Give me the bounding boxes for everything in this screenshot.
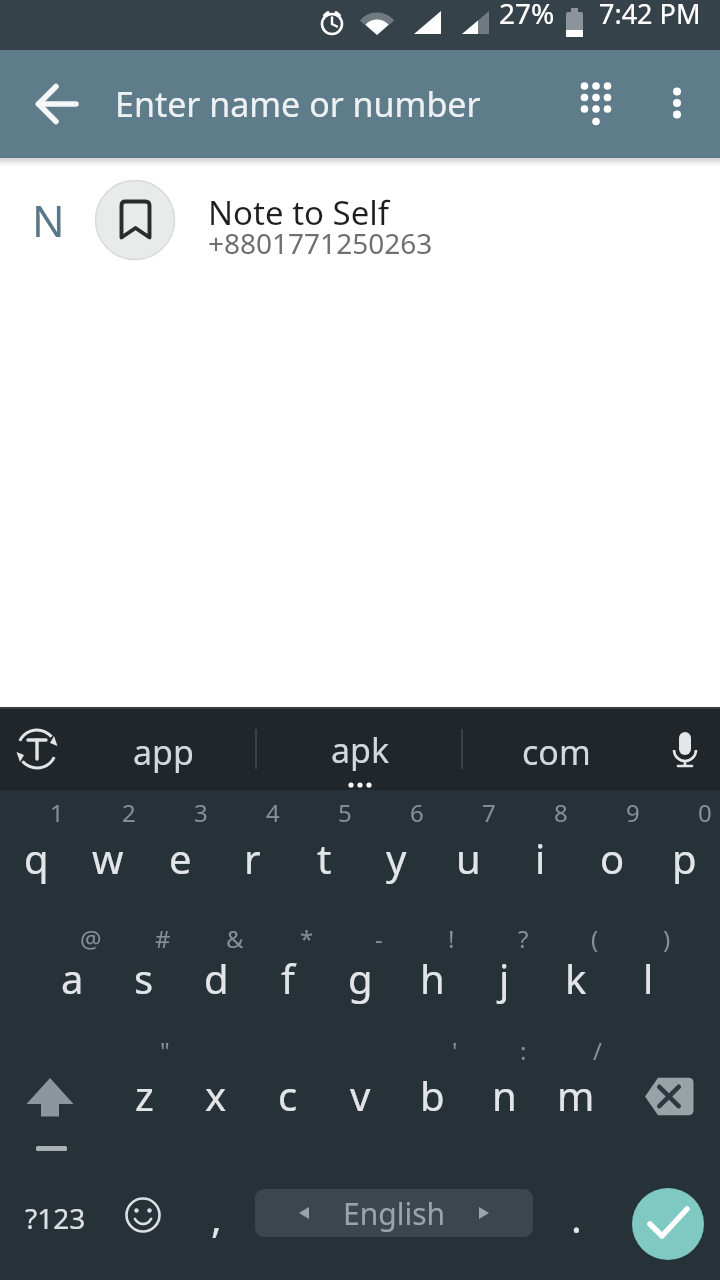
staticText: 0: [698, 796, 712, 829]
staticText: .: [571, 1190, 582, 1244]
staticText: u: [456, 831, 481, 885]
staticText: ': [452, 1034, 458, 1067]
staticText: b: [420, 1068, 445, 1122]
staticText: 5: [338, 796, 352, 829]
staticText: f: [281, 951, 295, 1005]
staticText: p: [672, 831, 697, 885]
staticText: !: [448, 922, 455, 955]
button[interactable]: q: [0, 820, 72, 896]
button[interactable]: u: [432, 820, 504, 896]
button[interactable]: x: [180, 1057, 252, 1133]
button[interactable]: c: [252, 1057, 324, 1133]
staticText: N: [32, 191, 65, 250]
button[interactable]: [10, 1055, 90, 1135]
staticText: 2: [122, 796, 136, 829]
button[interactable]: [624, 1055, 704, 1135]
staticText: s: [134, 951, 154, 1005]
button[interactable]: a: [36, 940, 108, 1016]
staticText: q: [24, 831, 49, 885]
button[interactable]: y: [360, 820, 432, 896]
staticText: 7:42 PM: [599, 0, 701, 32]
staticText: a: [61, 951, 84, 1005]
staticText: Note to Self: [208, 190, 390, 235]
staticText: x: [205, 1068, 227, 1122]
button[interactable]: v: [324, 1057, 396, 1133]
staticText: #: [155, 922, 171, 955]
button[interactable]: h: [396, 940, 468, 1016]
staticText: 3: [194, 796, 208, 829]
staticText: -: [375, 922, 383, 955]
staticText: *: [300, 922, 314, 955]
button[interactable]: l: [612, 940, 684, 1016]
staticText: l: [643, 951, 654, 1005]
button[interactable]: b: [396, 1057, 468, 1133]
button[interactable]: ?123: [10, 1183, 100, 1253]
staticText: n: [492, 1068, 517, 1122]
button[interactable]: [20, 67, 94, 141]
staticText: ": [160, 1034, 170, 1067]
button[interactable]: com: [481, 717, 631, 787]
button[interactable]: [632, 1188, 704, 1260]
staticText: (: [591, 922, 599, 955]
staticText: e: [169, 831, 192, 885]
staticText: 4: [266, 796, 280, 829]
button[interactable]: English: [255, 1189, 533, 1237]
button[interactable]: m: [540, 1057, 612, 1133]
button[interactable]: n: [468, 1057, 540, 1133]
button[interactable]: [6, 718, 68, 780]
button[interactable]: [646, 67, 708, 141]
button[interactable]: r: [216, 820, 288, 896]
staticText: 6: [410, 796, 424, 829]
button[interactable]: z: [108, 1057, 180, 1133]
staticText: +8801771250263: [208, 224, 433, 262]
button[interactable]: j: [468, 940, 540, 1016]
staticText: j: [499, 951, 510, 1005]
button[interactable]: [559, 65, 633, 143]
button[interactable]: e: [144, 820, 216, 896]
button[interactable]: app: [88, 717, 238, 787]
staticText: ?: [518, 922, 529, 955]
staticText: d: [204, 951, 229, 1005]
staticText: o: [600, 831, 625, 885]
staticText: :: [520, 1034, 527, 1067]
button[interactable]: N: [0, 170, 720, 270]
staticText: /: [593, 1034, 602, 1067]
button[interactable]: [654, 718, 716, 780]
staticText: r: [244, 831, 261, 885]
button[interactable]: k: [540, 940, 612, 1016]
staticText: @: [80, 922, 102, 955]
staticText: m: [557, 1068, 595, 1122]
button[interactable]: [108, 1182, 178, 1252]
button[interactable]: g: [324, 940, 396, 1016]
button[interactable]: f: [252, 940, 324, 1016]
staticText: &: [226, 922, 244, 955]
button[interactable]: p: [648, 820, 720, 896]
staticText: z: [135, 1068, 154, 1122]
button[interactable]: .: [546, 1182, 606, 1252]
staticText: w: [92, 831, 124, 885]
button[interactable]: o: [576, 820, 648, 896]
staticText: apk: [331, 727, 390, 773]
button[interactable]: d: [180, 940, 252, 1016]
staticText: g: [348, 951, 373, 1005]
staticText: app: [133, 729, 194, 775]
button[interactable]: ,: [186, 1182, 246, 1252]
staticText: 27%: [499, 0, 555, 32]
staticText: t: [317, 831, 332, 885]
button[interactable]: s: [108, 940, 180, 1016]
staticText: c: [278, 1068, 298, 1122]
staticText: ?123: [25, 1199, 86, 1237]
staticText: v: [350, 1068, 371, 1122]
staticText: Enter name or number: [115, 81, 481, 127]
staticText: English: [343, 1193, 446, 1234]
staticText: 9: [626, 796, 640, 829]
button[interactable]: t: [288, 820, 360, 896]
staticText: ,: [211, 1190, 222, 1244]
staticText: ): [663, 922, 671, 955]
button[interactable]: i: [504, 820, 576, 896]
button[interactable]: apk: [285, 715, 435, 785]
staticText: 8: [554, 796, 568, 829]
button[interactable]: w: [72, 820, 144, 896]
staticText: h: [420, 951, 445, 1005]
staticText: 1: [50, 796, 64, 829]
